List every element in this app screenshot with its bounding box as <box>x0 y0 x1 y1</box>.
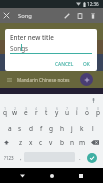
button[interactable]: f <box>36 123 46 133</box>
button[interactable]: x <box>26 137 36 147</box>
button[interactable]: 1 <box>0 103 10 117</box>
button[interactable]: Voice input <box>88 95 98 105</box>
staticText: 6 <box>56 106 59 111</box>
staticText: Mandarin Chinese notes <box>17 77 70 83</box>
staticText: b <box>60 138 64 147</box>
button[interactable]: v <box>46 137 56 147</box>
staticText: a <box>8 124 12 133</box>
button[interactable]: b <box>57 137 67 147</box>
button[interactable]: n <box>67 137 77 147</box>
button[interactable]: 6 <box>52 103 62 117</box>
button[interactable]: k <box>77 123 87 133</box>
staticText: . <box>79 154 81 162</box>
staticText: OK <box>83 61 90 68</box>
staticText: d <box>29 124 33 133</box>
button[interactable]: Shift <box>1 137 12 148</box>
button[interactable]: a <box>5 123 15 133</box>
staticText: Song <box>18 12 32 20</box>
button[interactable]: Home <box>44 168 60 183</box>
staticText: o <box>85 108 89 117</box>
button[interactable]: Enter <box>83 151 101 165</box>
button[interactable]: OK <box>78 59 94 69</box>
staticText: t <box>45 108 48 117</box>
button[interactable]: j <box>67 123 77 133</box>
button[interactable]: Copy <box>74 10 86 22</box>
button[interactable]: 5 <box>41 103 51 117</box>
button[interactable]: g <box>46 123 56 133</box>
staticText: 3 <box>25 106 28 111</box>
staticText: p <box>96 108 100 117</box>
staticText: h <box>60 124 65 133</box>
staticText: v <box>49 138 53 147</box>
staticText: i <box>76 108 78 117</box>
staticText: 8 <box>76 106 79 111</box>
button[interactable]: Backspace <box>89 137 100 148</box>
staticText: j <box>71 124 73 133</box>
button[interactable]: Delete <box>87 10 99 22</box>
staticText: , <box>20 154 22 162</box>
button[interactable]: m <box>77 137 87 147</box>
staticText: 5 <box>45 106 48 111</box>
button[interactable]: CANCEL <box>53 59 75 69</box>
staticText: ?123 <box>4 155 14 161</box>
staticText: m <box>79 138 86 147</box>
button[interactable]: l <box>88 123 98 133</box>
staticText: s <box>18 124 22 133</box>
staticText: k <box>80 124 84 133</box>
button[interactable]: 7 <box>62 103 72 117</box>
staticText: 9 <box>86 106 89 111</box>
staticText: CANCEL <box>55 61 74 68</box>
button[interactable]: d <box>26 123 36 133</box>
button[interactable]: 9 <box>82 103 92 117</box>
button[interactable]: . <box>76 152 83 164</box>
staticText: l <box>92 124 94 133</box>
staticText: w <box>12 108 18 117</box>
button[interactable]: c <box>36 137 46 147</box>
button[interactable]: ?123 <box>1 152 17 164</box>
button[interactable]: , <box>17 152 24 164</box>
staticText: Enter new title <box>10 33 54 42</box>
button[interactable]: s <box>15 123 25 133</box>
button[interactable]: Edit <box>61 10 73 22</box>
staticText: n <box>70 138 75 147</box>
button[interactable]: 4 <box>31 103 41 117</box>
staticText: Songs <box>10 44 29 53</box>
staticText: q <box>3 108 7 117</box>
staticText: 0 <box>97 106 100 111</box>
button[interactable]: Recents <box>73 168 89 183</box>
staticText: c <box>39 138 43 147</box>
staticText: 1 <box>4 106 7 111</box>
button[interactable]: Back <box>14 168 30 183</box>
button[interactable]: h <box>57 123 67 133</box>
button[interactable]: 0 <box>93 103 103 117</box>
staticText: u <box>65 108 70 117</box>
staticText: z <box>19 138 23 147</box>
button[interactable]: Close <box>0 9 13 22</box>
staticText: 2 <box>14 106 17 111</box>
button[interactable]: 8 <box>72 103 82 117</box>
staticText: x <box>29 138 33 147</box>
staticText: y <box>55 108 59 117</box>
staticText: 12:36 <box>87 1 99 7</box>
staticText: 4 <box>35 106 38 111</box>
staticText: r <box>35 108 38 117</box>
button[interactable]: Add <box>80 73 93 86</box>
staticText: 7 <box>66 106 69 111</box>
button[interactable]: 3 <box>21 103 31 117</box>
button[interactable]: 2 <box>10 103 20 117</box>
staticText: e <box>24 108 28 117</box>
staticText: g <box>49 124 53 133</box>
button[interactable]: z <box>16 137 26 147</box>
staticText: f <box>40 124 43 133</box>
